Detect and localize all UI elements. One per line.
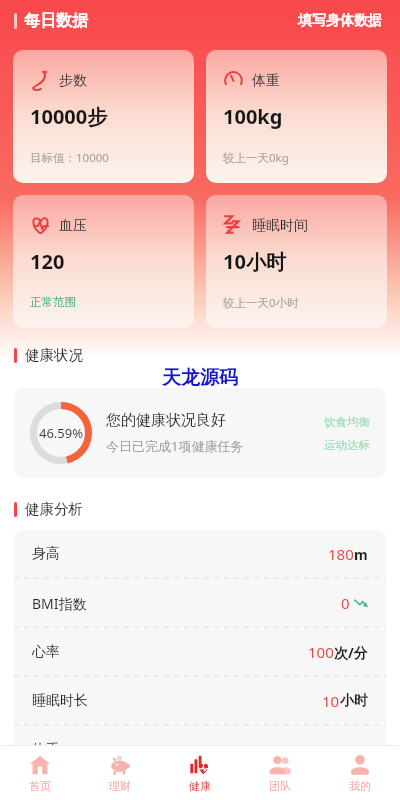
button[interactable]: 睡眠时间 [206,195,387,328]
staticText: 健康分析 [25,500,83,518]
staticText: 我的 [349,779,371,793]
button[interactable]: 健康 [160,746,240,800]
button[interactable]: 血压 [13,195,194,328]
staticText: 今日已完成1项健康任务 [106,437,244,455]
staticText: 团队 [269,779,291,793]
staticText: 心率 [32,643,60,661]
button[interactable]: 心率 [14,628,386,676]
staticText: 次/分 [334,643,368,662]
button[interactable]: 睡眠时长 [14,677,386,725]
staticText: 天龙源码 [162,366,238,388]
staticText: 100kg [223,103,283,130]
button[interactable]: 首页 [0,746,80,800]
staticText: 您的健康状况良好 [106,411,226,430]
staticText: 身高 [32,545,60,563]
staticText: 小时 [340,692,368,710]
button[interactable]: 团队 [240,746,320,800]
button[interactable]: 步数 [13,50,194,183]
staticText: 100 [308,642,334,662]
staticText: 睡眠时长 [32,692,88,710]
staticText: 0 [341,593,350,613]
staticText: 每日数据 [24,11,88,31]
staticText: BMI指数 [32,594,87,613]
staticText: 健康 [189,779,211,793]
button[interactable]: 填写身体数据 [294,8,386,34]
button[interactable]: BMI指数 [14,579,386,627]
staticText: 饮食均衡 [324,415,370,429]
button[interactable]: 体重 [14,726,386,774]
staticText: 血压 [59,217,87,235]
staticText: 健康状况 [25,346,83,364]
staticText: 体重 [32,741,60,759]
staticText: 步数 [59,72,87,90]
staticText: 120 [30,248,65,275]
staticText: 填写身体数据 [298,12,382,30]
staticText: 较上一天0小时 [223,295,299,311]
button[interactable]: 理财 [80,746,160,800]
staticText: 睡眠时间 [252,217,308,235]
button[interactable]: 我的 [320,746,400,800]
staticText: 较上一天0kg [223,150,289,166]
staticText: 10小时 [223,248,286,275]
staticText: 运动达标 [324,438,370,452]
button[interactable]: 身高 [14,530,386,578]
staticText: 首页 [29,779,51,793]
staticText: 目标值：10000 [30,150,109,166]
staticText: 10000步 [30,103,108,130]
staticText: 180 [328,544,354,564]
staticText: 10 [322,691,340,711]
button[interactable]: 体重 [206,50,387,183]
staticText: 100 [324,740,350,760]
staticText: kg [350,741,368,760]
staticText: 体重 [252,72,280,90]
staticText: m [354,545,368,564]
staticText: 46.59% [39,424,84,442]
staticText: 理财 [109,779,131,793]
staticText: 正常范围 [30,295,76,309]
button[interactable]: 46.59% [14,388,386,478]
